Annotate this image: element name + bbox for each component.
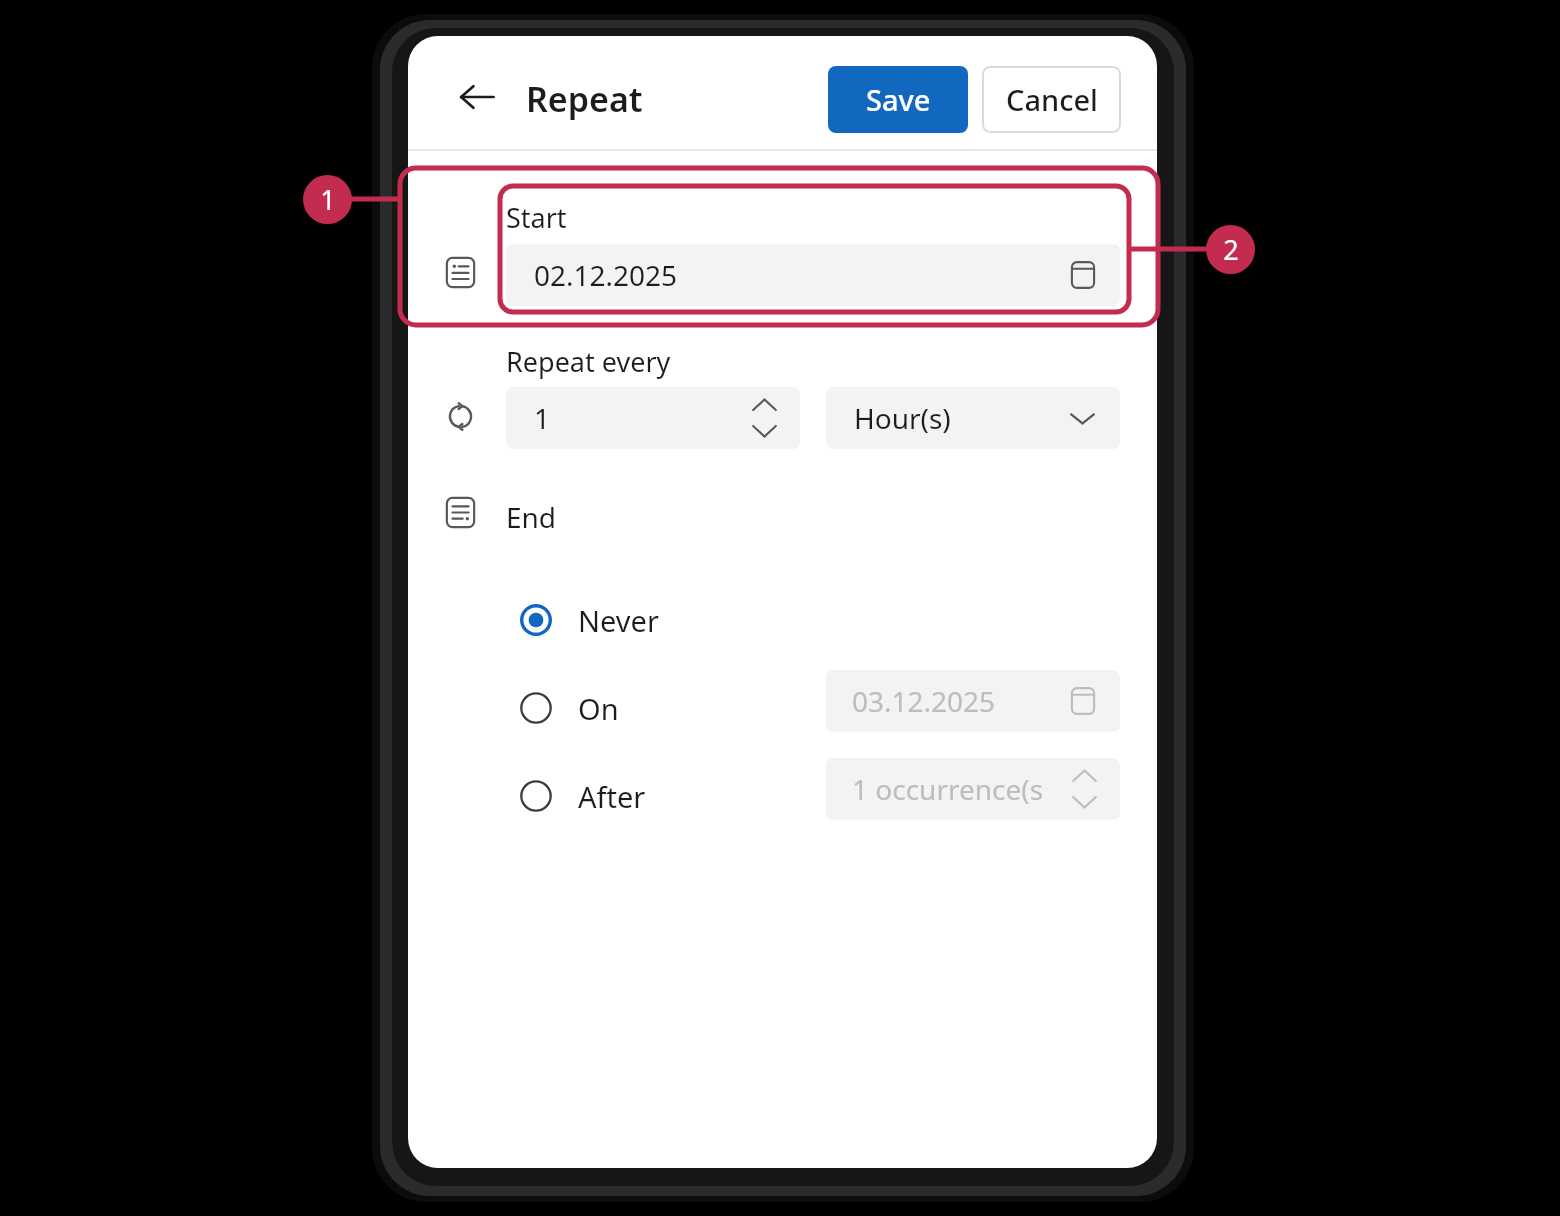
staticText: Hour(s) bbox=[854, 399, 951, 437]
button[interactable]: 02.12.2025 bbox=[506, 244, 1120, 306]
button[interactable]: 1 bbox=[506, 387, 800, 449]
button[interactable]: Never bbox=[520, 592, 770, 648]
staticText: 2 bbox=[1223, 231, 1239, 268]
button[interactable]: Pick start date bbox=[1068, 260, 1098, 290]
staticText: On bbox=[578, 689, 619, 728]
staticText: After bbox=[578, 777, 646, 816]
button[interactable]: Increment or decrement bbox=[751, 396, 778, 440]
button[interactable]: 03.12.2025 bbox=[826, 670, 1120, 732]
staticText: Repeat every bbox=[506, 343, 671, 380]
staticText: 03.12.2025 bbox=[852, 682, 996, 720]
staticText: End bbox=[506, 498, 557, 536]
button[interactable]: 1 occurrence(s bbox=[826, 758, 1120, 820]
button[interactable]: Cancel bbox=[982, 66, 1121, 133]
button[interactable]: Save bbox=[828, 66, 968, 133]
staticText: 1 bbox=[534, 399, 551, 437]
staticText: Start bbox=[506, 199, 567, 236]
staticText: 1 bbox=[320, 181, 336, 218]
button[interactable]: On bbox=[520, 680, 770, 736]
button[interactable]: Hour(s) bbox=[826, 387, 1120, 449]
staticText: Cancel bbox=[1006, 80, 1098, 119]
button[interactable]: Back bbox=[454, 74, 500, 120]
staticText: 02.12.2025 bbox=[534, 256, 678, 294]
staticText: Save bbox=[866, 80, 931, 119]
staticText: 1 occurrence(s bbox=[852, 770, 1044, 808]
staticText: Never bbox=[578, 601, 659, 640]
staticText: Repeat bbox=[526, 76, 643, 122]
button[interactable]: After bbox=[520, 768, 770, 824]
